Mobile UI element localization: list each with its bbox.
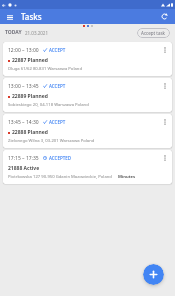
staticText: 22887 Planned: [12, 57, 48, 64]
staticText: Accept task: [141, 30, 166, 36]
button[interactable]: 13:00 – 13:45: [3, 78, 172, 112]
button[interactable]: More options: [160, 117, 170, 127]
button[interactable]: 17:15 – 17:35: [3, 150, 172, 184]
staticText: Zielonego Wilna 3, 03-201 Warszawa Polan…: [8, 138, 95, 144]
button[interactable]: Add task: [143, 264, 164, 285]
staticText: 13:00 – 13:45: [8, 83, 39, 90]
button[interactable]: Navigation menu: [4, 11, 16, 23]
button[interactable]: Accept task: [137, 28, 170, 38]
staticText: 12:00 – 13:00: [8, 47, 39, 54]
staticText: Tasks: [21, 11, 42, 22]
button[interactable]: Refresh: [158, 10, 171, 23]
button[interactable]: 12:00 – 13:00: [3, 42, 172, 76]
staticText: 21.03.2021: [25, 30, 49, 36]
staticText: ACCEPT: [49, 47, 66, 53]
staticText: Sobieskiego 20, 04-118 Warszawa Poland: [8, 102, 89, 108]
staticText: 22888 Planned: [12, 129, 48, 136]
button[interactable]: More options: [160, 45, 170, 55]
button[interactable]: More options: [160, 153, 170, 163]
button[interactable]: More options: [160, 81, 170, 91]
staticText: 21888 Active: [8, 165, 40, 172]
staticText: 17:15 – 17:35: [8, 155, 39, 162]
staticText: Minutes: [118, 174, 136, 180]
staticText: 13:45 – 14:30: [8, 119, 39, 126]
staticText: ACCEPT: [49, 119, 66, 125]
staticText: Dluga 61/62 80-831 Warszawa Poland: [8, 66, 82, 72]
staticText: TODAY: [5, 29, 22, 36]
staticText: Piotrkowska 127 90-950 Gdanin Mazowiecki…: [8, 174, 112, 180]
staticText: ACCEPTED: [49, 155, 72, 161]
staticText: 22889 Planned: [12, 93, 48, 100]
staticText: ACCEPT: [49, 83, 66, 89]
button[interactable]: 13:45 – 14:30: [3, 114, 172, 148]
